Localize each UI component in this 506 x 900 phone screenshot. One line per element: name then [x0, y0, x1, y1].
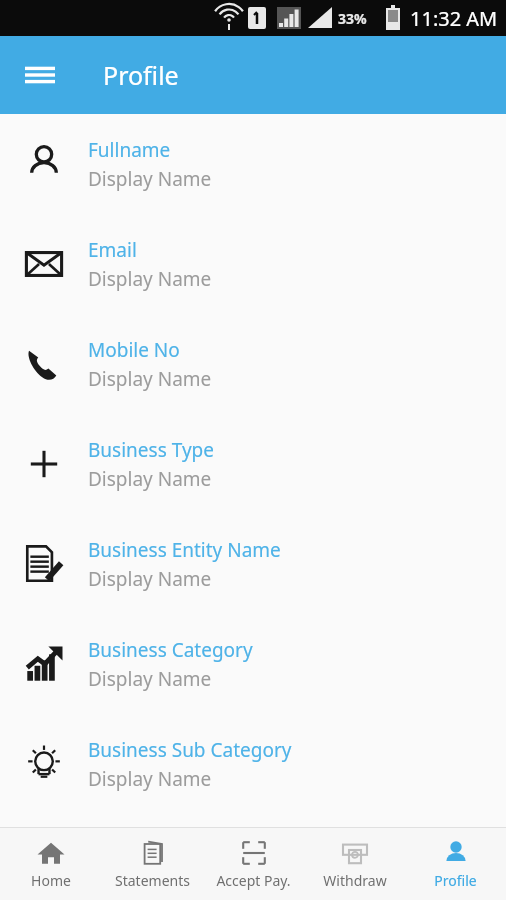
button[interactable]: Statements	[102, 828, 203, 900]
button[interactable]: Profile	[405, 828, 506, 900]
staticText: Business Entity Name	[88, 537, 281, 563]
staticText: Email	[88, 237, 137, 263]
staticText: Withdraw	[323, 871, 387, 890]
button[interactable]: Email	[0, 214, 506, 314]
staticText: Accept Pay.	[216, 871, 291, 890]
button[interactable]: Business Type	[0, 414, 506, 514]
staticText: Business Type	[88, 437, 214, 463]
staticText: Display Name	[88, 566, 212, 592]
staticText: 33%	[338, 9, 367, 28]
button[interactable]: Mobile No	[0, 314, 506, 414]
staticText: Home	[31, 871, 71, 890]
staticText: Display Name	[88, 466, 212, 492]
staticText: Business Category	[88, 637, 253, 663]
staticText: Display Name	[88, 666, 212, 692]
staticText: Display Name	[88, 166, 212, 192]
staticText: Business Sub Category	[88, 737, 292, 763]
staticText: Display Name	[88, 766, 212, 792]
staticText: Display Name	[88, 266, 212, 292]
button[interactable]: Withdraw	[304, 828, 405, 900]
button[interactable]: Business Category	[0, 614, 506, 714]
button[interactable]: Business Entity Name	[0, 514, 506, 614]
button[interactable]: Business Sub Category	[0, 714, 506, 814]
button[interactable]: Accept Pay.	[203, 828, 304, 900]
staticText: Display Name	[88, 366, 212, 392]
button[interactable]: Home	[0, 828, 102, 900]
staticText: Mobile No	[88, 337, 180, 363]
button[interactable]: Open navigation menu	[14, 49, 66, 101]
staticText: 11:32 AM	[410, 5, 498, 32]
staticText: Profile	[434, 871, 477, 890]
button[interactable]: Fullname	[0, 114, 506, 214]
staticText: Statements	[115, 871, 190, 890]
staticText: Profile	[103, 58, 179, 92]
staticText: Fullname	[88, 137, 171, 163]
